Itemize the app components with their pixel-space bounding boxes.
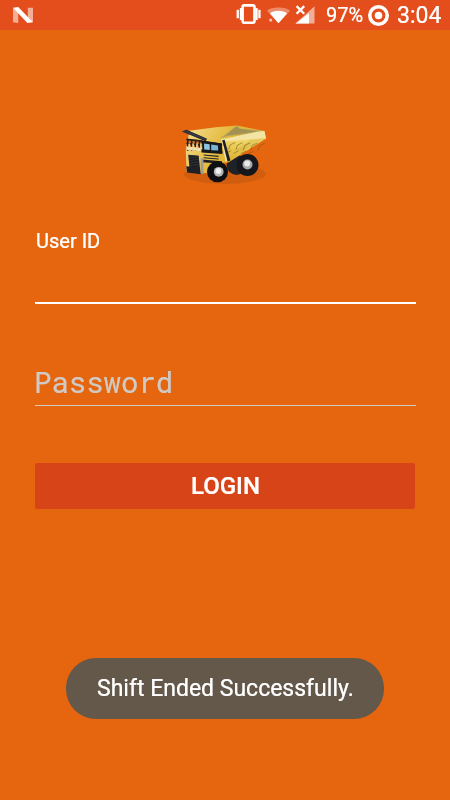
staticText: LOGIN bbox=[191, 472, 260, 500]
button[interactable]: LOGIN bbox=[35, 463, 415, 509]
staticText: User ID bbox=[36, 229, 101, 252]
staticText: Password bbox=[34, 363, 174, 401]
staticText: 97% bbox=[326, 3, 364, 26]
staticText: 3:04 bbox=[397, 2, 442, 29]
staticText: Shift Ended Successfully. bbox=[97, 675, 354, 702]
